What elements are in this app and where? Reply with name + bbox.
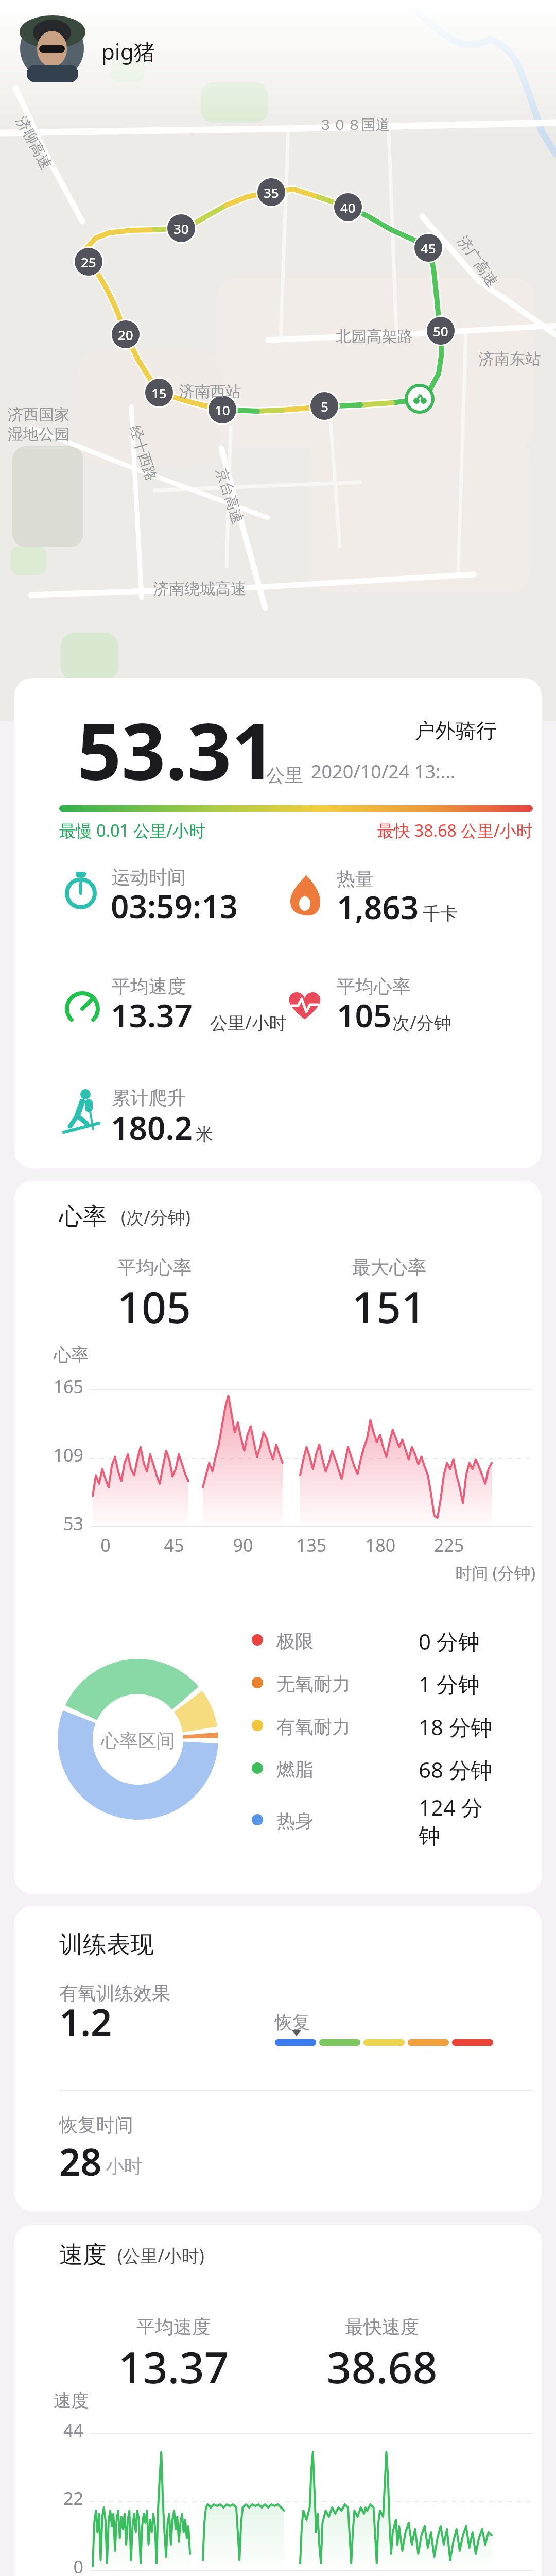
staticText: 最大心率	[235, 1256, 544, 1279]
staticText: 户外骑行	[188, 718, 497, 743]
staticText: 109	[0, 1443, 83, 1467]
staticText: 经十西路	[126, 423, 161, 483]
staticText: 13.37	[111, 993, 193, 1037]
staticText: 0	[0, 2555, 83, 2576]
staticText: 124 分	[419, 1792, 483, 1822]
button[interactable]	[14, 678, 542, 1168]
staticText: 28	[59, 2136, 102, 2187]
staticText: 0 分钟	[419, 1626, 480, 1656]
staticText: 济南西站	[179, 382, 241, 401]
staticText: 钟	[419, 1823, 440, 1850]
staticText: 济聊高速	[13, 113, 55, 173]
staticText: 105	[337, 993, 392, 1037]
staticText: 13.37	[19, 2337, 328, 2396]
staticText: 22	[0, 2486, 83, 2510]
staticText: 公里/小时	[210, 1011, 287, 1035]
staticText: 公里	[266, 764, 303, 787]
staticText: 次/分钟	[392, 1011, 451, 1035]
staticText: 心率	[59, 1201, 107, 1231]
staticText: 135	[157, 1533, 466, 1557]
staticText: 平均速度	[112, 975, 186, 998]
staticText: 平均心率	[337, 975, 411, 998]
staticText: 44	[0, 2418, 83, 2442]
staticText: 1 分钟	[419, 1669, 480, 1699]
button[interactable]	[14, 2225, 542, 2576]
staticText: 151	[234, 1277, 543, 1335]
button[interactable]	[14, 1181, 542, 1894]
staticText: 有氧训练效果	[59, 1981, 170, 2005]
staticText: 燃脂	[276, 1758, 314, 1781]
staticText: 15	[151, 384, 167, 402]
staticText: 30	[173, 219, 189, 238]
staticText: 最慢 0.01 公里/小时	[59, 819, 206, 842]
staticText: 165	[0, 1375, 83, 1398]
staticText: 50	[433, 322, 448, 340]
staticText: 1,863	[337, 885, 419, 928]
staticText: 0	[0, 1533, 260, 1557]
staticText: 无氧耐力	[276, 1672, 351, 1696]
staticText: 速度	[54, 2389, 89, 2412]
staticText: 45	[20, 1533, 328, 1557]
staticText: 北园高架路	[336, 327, 413, 346]
staticText: 济西国家	[8, 405, 69, 425]
staticText: 恢复时间	[59, 2113, 133, 2137]
staticText: 小时	[106, 2155, 143, 2178]
staticText: (公里/小时)	[117, 2244, 205, 2267]
staticText: 03:59:13	[111, 884, 238, 927]
staticText: 最快 38.68 公里/小时	[224, 819, 533, 842]
staticText: 米	[196, 1123, 213, 1145]
staticText: 20	[118, 326, 133, 344]
staticText: 180.2	[111, 1106, 193, 1149]
staticText: 90	[89, 1533, 397, 1557]
staticText: 1.2	[59, 1996, 112, 2047]
staticText: ３０８国道	[318, 116, 390, 134]
staticText: 运动时间	[112, 866, 186, 889]
staticText: 53	[0, 1512, 83, 1535]
staticText: 恢复	[275, 2011, 310, 2033]
staticText: 45	[421, 239, 436, 257]
staticText: pig猪	[101, 37, 155, 66]
staticText: 35	[264, 183, 279, 201]
staticText: 平均速度	[19, 2315, 328, 2338]
staticText: 累计爬升	[112, 1086, 186, 1109]
staticText: 极限	[276, 1630, 314, 1653]
staticText: 心率区间	[0, 1729, 292, 1752]
staticText: 济南东站	[479, 349, 541, 369]
staticText: 湿地公园	[8, 425, 69, 444]
staticText: 5	[321, 397, 328, 415]
staticText: 热量	[337, 867, 374, 890]
button[interactable]	[14, 1906, 542, 2211]
staticText: 225	[294, 1533, 556, 1557]
staticText: 济南绕城高速	[153, 579, 246, 599]
staticText: 105	[0, 1277, 308, 1335]
staticText: 2020/10/24 13:…	[311, 759, 456, 784]
staticText: 最快速度	[228, 2315, 536, 2338]
staticText: 40	[340, 198, 356, 216]
staticText: 53.31	[77, 697, 276, 802]
staticText: 10	[215, 401, 230, 419]
staticText: 京台高速	[212, 466, 247, 526]
staticText: (次/分钟)	[121, 1205, 191, 1229]
staticText: 平均心率	[0, 1256, 309, 1279]
staticText: 心率	[54, 1344, 89, 1366]
staticText: 68 分钟	[419, 1755, 492, 1784]
staticText: 25	[81, 253, 96, 271]
staticText: 180	[226, 1533, 535, 1557]
staticText: 济广高速	[454, 233, 502, 290]
staticText: 千卡	[423, 903, 458, 925]
staticText: 有氧耐力	[276, 1715, 351, 1738]
staticText: 时间 (分钟)	[227, 1562, 535, 1584]
staticText: 训练表现	[59, 1930, 154, 1960]
staticText: 热身	[276, 1809, 314, 1833]
staticText: 18 分钟	[419, 1712, 492, 1741]
staticText: 38.68	[228, 2337, 536, 2396]
staticText: 速度	[59, 2240, 107, 2270]
button[interactable]	[10, 9, 227, 76]
